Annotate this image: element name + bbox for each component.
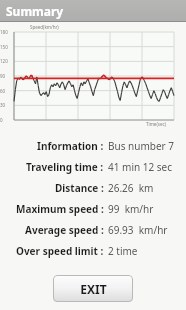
staticText: 69.93 km/hr [108,223,168,237]
staticText: 60 [0,88,6,94]
staticText: 120 [0,58,8,64]
staticText: EXIT [80,281,107,297]
button[interactable]: EXIT [53,275,133,302]
staticText: 99 km/hr [108,202,154,216]
staticText: Bus number 7 [108,139,175,153]
staticText: 0 [0,117,3,123]
staticText: 180 [0,29,8,35]
staticText: 90 [0,73,6,79]
staticText: Summary [6,3,64,19]
staticText: 26.26 km [108,181,154,195]
staticText: Average speed : [25,223,104,237]
staticText: 2 time [108,244,138,258]
staticText: 41 min 12 sec [108,160,173,174]
staticText: Distance : [55,181,104,195]
staticText: Information : [37,139,104,153]
staticText: Speed(km/hr) [30,24,59,30]
staticText: 30 [0,102,6,108]
staticText: Over speed limit : [16,244,104,258]
staticText: 150 [0,44,8,50]
staticText: Time(sec) [146,121,166,127]
staticText: Traveling time : [26,160,104,174]
staticText: Maximum speed : [16,202,104,216]
